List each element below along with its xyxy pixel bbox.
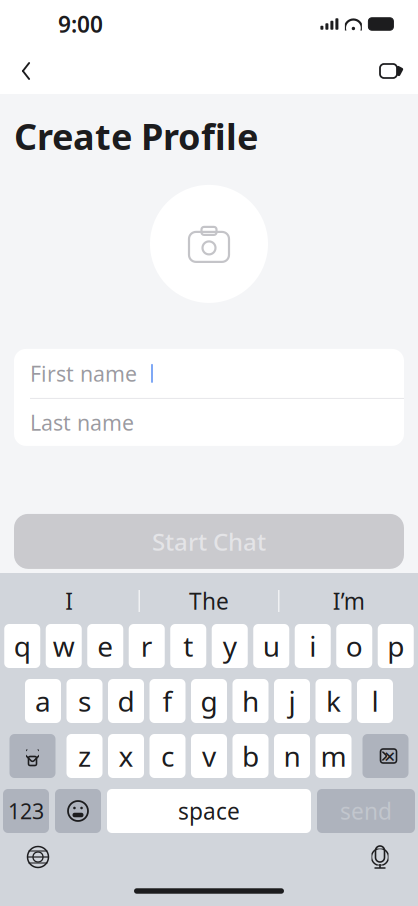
button[interactable]: g [191, 679, 227, 723]
button[interactable]: m [315, 734, 351, 778]
staticText: v [202, 737, 216, 775]
staticText: send [340, 796, 392, 826]
button[interactable]: p [378, 624, 414, 668]
button[interactable]: k [315, 679, 351, 723]
button[interactable]: Delete [362, 734, 408, 778]
button[interactable]: u [253, 624, 289, 668]
staticText: e [97, 627, 113, 665]
staticText: space [178, 796, 240, 826]
staticText: p [387, 627, 404, 665]
button[interactable]: Add profile photo [150, 185, 268, 303]
button[interactable]: space [107, 789, 311, 833]
staticText: n [283, 737, 300, 775]
staticText: Create Profile [14, 112, 258, 160]
staticText: g [200, 682, 217, 720]
button[interactable]: z [66, 734, 102, 778]
staticText: × [384, 743, 395, 769]
button[interactable]: Start video call [370, 49, 414, 93]
button[interactable]: Last name [14, 399, 404, 446]
button[interactable]: j [274, 679, 310, 723]
button[interactable]: b [232, 734, 268, 778]
staticText: h [242, 682, 259, 720]
button[interactable]: Back [4, 49, 48, 93]
staticText: f [162, 682, 172, 720]
staticText: t [183, 627, 193, 665]
staticText: i [309, 627, 316, 665]
button[interactable]: First name [14, 349, 404, 398]
button[interactable]: send [317, 789, 415, 833]
button[interactable]: i [295, 624, 331, 668]
staticText: I [65, 586, 73, 616]
button[interactable]: I [0, 578, 139, 624]
button[interactable]: Shift [9, 734, 55, 778]
button[interactable]: 123 [3, 789, 49, 833]
staticText: c [161, 737, 174, 775]
button[interactable]: y [212, 624, 248, 668]
staticText: l [371, 682, 378, 720]
button[interactable]: I’m [279, 578, 418, 624]
staticText: y [223, 627, 237, 665]
staticText: m [320, 737, 346, 775]
button[interactable]: Start Chat [14, 514, 404, 569]
staticText: 123 [8, 797, 44, 825]
button[interactable]: f [149, 679, 185, 723]
button[interactable]: Dictation [358, 837, 402, 877]
button[interactable]: t [170, 624, 206, 668]
button[interactable]: Emoji [55, 789, 101, 833]
button[interactable]: v [191, 734, 227, 778]
staticText: s [78, 682, 91, 720]
staticText: b [242, 737, 259, 775]
staticText: r [141, 627, 153, 665]
staticText: j [288, 682, 295, 720]
staticText: Last name [30, 408, 134, 436]
staticText: z [78, 737, 91, 775]
button[interactable]: Next keyboard [16, 837, 60, 877]
button[interactable]: l [357, 679, 393, 723]
button[interactable]: s [66, 679, 102, 723]
button[interactable]: r [129, 624, 165, 668]
staticText: k [326, 682, 341, 720]
staticText: 9:00 [58, 9, 103, 39]
button[interactable]: a [25, 679, 61, 723]
staticText: The [189, 586, 229, 616]
staticText: I’m [333, 586, 365, 616]
staticText: u [263, 627, 280, 665]
button[interactable]: x [108, 734, 144, 778]
staticText: o [346, 627, 363, 665]
button[interactable]: q [4, 624, 40, 668]
staticText: Start Chat [152, 525, 266, 557]
button[interactable]: The [140, 578, 278, 624]
button[interactable]: h [232, 679, 268, 723]
button[interactable]: n [274, 734, 310, 778]
button[interactable]: c [149, 734, 185, 778]
button[interactable]: e [87, 624, 123, 668]
staticText: d [117, 682, 134, 720]
staticText: q [14, 627, 31, 665]
button[interactable]: o [336, 624, 372, 668]
staticText: First name [30, 359, 137, 387]
staticText: x [118, 737, 133, 775]
staticText: a [35, 682, 51, 720]
button[interactable]: w [46, 624, 82, 668]
button[interactable]: d [108, 679, 144, 723]
staticText: w [53, 627, 75, 665]
